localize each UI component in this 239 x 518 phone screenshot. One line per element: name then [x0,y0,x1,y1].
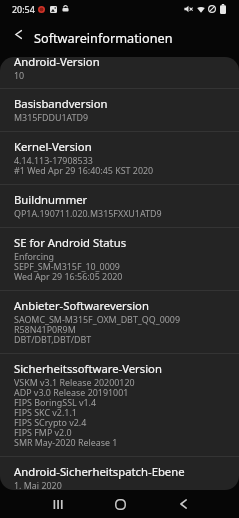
button[interactable]: SE for Android Status [0,228,239,290]
staticText: SAOMC_SM-M315F_OXM_DBT_QQ_0009 R58N41P0R… [14,315,180,345]
button[interactable]: Android-Sicherheitspatch-Ebene [0,457,239,490]
button[interactable]: Letzte Apps [26,490,88,518]
staticText: Android-Version [14,57,100,69]
staticText: Enforcing SEPF_SM-M315F_10_0009 Wed Apr … [14,252,123,282]
staticText: Sicherheitssoftware-Version [14,364,162,376]
button[interactable]: Android-Version [0,57,239,88]
staticText: 10 [14,71,25,81]
button[interactable]: Zurück [6,22,31,47]
button[interactable]: Anbieter-Softwareversion [0,291,239,353]
button[interactable]: Buildnummer [0,185,239,227]
staticText: 4.14.113-17908533 #1 Wed Apr 29 16:40:45… [14,156,154,176]
staticText: SE for Android Status [14,238,127,250]
staticText: Softwareinformationen [34,29,173,46]
button[interactable]: Kernel-Version [0,132,239,184]
staticText: Basisbandversion [14,99,108,111]
button[interactable]: Startbildschirm [89,490,151,518]
button[interactable]: Basisbandversion [0,89,239,131]
staticText: Buildnummer [14,195,88,207]
staticText: 20:54 [12,3,35,15]
staticText: M315FDDU1ATD9 [14,113,89,123]
button[interactable]: Sicherheitssoftware-Version [0,354,239,456]
staticText: Kernel-Version [14,142,92,154]
staticText: Android-Sicherheitspatch-Ebene [14,467,185,479]
staticText: VSKM v3.1 Release 20200120 ADP v3.0 Rele… [14,378,135,448]
button[interactable]: Zurück [152,490,214,518]
staticText: 1. Mai 2020 [14,481,62,489]
staticText: Anbieter-Softwareversion [14,301,149,313]
staticText: QP1A.190711.020.M315FXXU1ATD9 [14,209,162,219]
